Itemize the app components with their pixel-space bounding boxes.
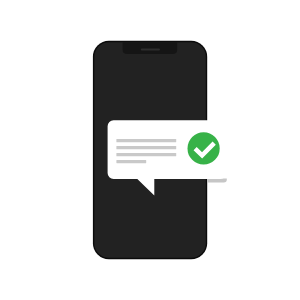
button[interactable]: Message delivered [188, 132, 220, 164]
button[interactable]: Sent message [108, 120, 227, 179]
